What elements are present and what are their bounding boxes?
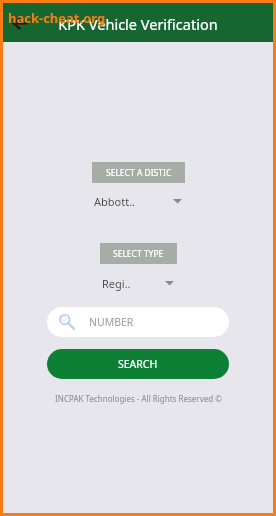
staticText: INCPAK Technologies - All Rights Reserve… (55, 393, 222, 404)
staticText: KPK Vehicle Verification (58, 14, 218, 34)
button[interactable]: NUMBER (47, 307, 229, 337)
staticText: Regi.. (102, 276, 131, 291)
button[interactable]: SELECT A DISTIC (92, 162, 185, 183)
staticText: SEARCH (118, 357, 158, 371)
button[interactable]: Abbott.. (94, 191, 182, 211)
staticText: Abbott.. (94, 194, 136, 209)
staticText: SELECT TYPE (113, 248, 164, 260)
staticText: NUMBER (89, 315, 134, 329)
staticText: SELECT A DISTIC (106, 167, 172, 179)
button[interactable]: Back (3, 6, 37, 40)
button[interactable]: Regi.. (102, 273, 174, 293)
button[interactable]: SELECT TYPE (100, 243, 177, 264)
button[interactable]: SEARCH (47, 349, 229, 379)
staticText: hack-cheat.org (8, 9, 106, 27)
